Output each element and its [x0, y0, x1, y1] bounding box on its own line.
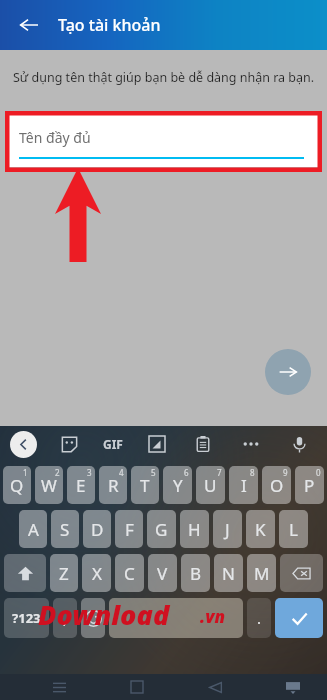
- button[interactable]: Home: [126, 676, 148, 698]
- staticText: L: [289, 518, 298, 541]
- button[interactable]: Emoji: [81, 598, 105, 638]
- button[interactable]: Shift: [4, 554, 46, 592]
- button[interactable]: Z: [50, 554, 78, 592]
- button[interactable]: S: [51, 510, 79, 548]
- staticText: 8: [250, 467, 255, 478]
- staticText: P: [304, 474, 315, 497]
- button[interactable]: More: [239, 432, 263, 456]
- staticText: D: [91, 518, 104, 541]
- staticText: Y: [173, 474, 183, 497]
- staticText: M: [254, 562, 270, 585]
- button[interactable]: G: [147, 510, 176, 548]
- button[interactable]: Clipboard: [191, 432, 215, 456]
- staticText: ,: [63, 608, 68, 628]
- button[interactable]: Close toolbar: [10, 431, 37, 458]
- staticText: R: [108, 474, 119, 497]
- button[interactable]: N: [214, 554, 243, 592]
- button[interactable]: T: [131, 466, 159, 504]
- staticText: T: [140, 474, 150, 497]
- staticText: A: [28, 518, 39, 541]
- staticText: O: [270, 474, 284, 497]
- button[interactable]: Stickers: [57, 432, 81, 456]
- staticText: 6: [184, 467, 189, 478]
- staticText: 4: [119, 467, 124, 478]
- button[interactable]: Backspace: [280, 554, 323, 592]
- staticText: Q: [10, 474, 24, 497]
- button[interactable]: GIF: [103, 436, 123, 452]
- staticText: .: [257, 608, 262, 628]
- staticText: Sử dụng tên thật giúp bạn bè dễ dàng nhậ…: [13, 69, 315, 86]
- staticText: J: [225, 518, 230, 541]
- staticText: B: [190, 562, 202, 585]
- staticText: 0: [316, 467, 321, 478]
- button[interactable]: Enter: [275, 598, 323, 638]
- button[interactable]: A: [19, 510, 47, 548]
- button[interactable]: H: [180, 510, 209, 548]
- staticText: H: [188, 518, 201, 541]
- button[interactable]: I: [229, 466, 258, 504]
- button[interactable]: Hide keyboard: [282, 676, 304, 698]
- staticText: 2: [55, 467, 60, 478]
- staticText: Tên đầy đủ: [19, 128, 91, 147]
- staticText: 1: [23, 467, 28, 478]
- button[interactable]: Voice input: [287, 432, 311, 456]
- button[interactable]: Q: [3, 466, 31, 504]
- button[interactable]: .: [247, 598, 271, 638]
- button[interactable]: Screenshot: [145, 432, 169, 456]
- staticText: X: [92, 562, 102, 585]
- button[interactable]: Back: [204, 676, 226, 698]
- staticText: 9: [283, 467, 288, 478]
- button[interactable]: ?123: [4, 598, 49, 638]
- staticText: I: [241, 474, 247, 497]
- staticText: S: [60, 518, 70, 541]
- staticText: 3: [87, 467, 92, 478]
- button[interactable]: W: [35, 466, 63, 504]
- button[interactable]: Recents: [48, 676, 70, 698]
- staticText: .vn: [200, 605, 226, 628]
- button[interactable]: M: [247, 554, 276, 592]
- staticText: F: [125, 518, 134, 541]
- staticText: ?123: [12, 609, 41, 627]
- button[interactable]: Next: [265, 349, 311, 395]
- button[interactable]: P: [295, 466, 324, 504]
- button[interactable]: X: [82, 554, 111, 592]
- button[interactable]: U: [196, 466, 225, 504]
- button[interactable]: ,: [53, 598, 77, 638]
- staticText: W: [41, 474, 57, 497]
- button[interactable]: R: [99, 466, 127, 504]
- staticText: GIF: [103, 436, 123, 452]
- button[interactable]: J: [213, 510, 242, 548]
- staticText: U: [204, 474, 217, 497]
- button[interactable]: L: [279, 510, 308, 548]
- button[interactable]: Y: [163, 466, 192, 504]
- staticText: 7: [217, 467, 222, 478]
- staticText: K: [255, 518, 266, 541]
- staticText: 5: [151, 467, 156, 478]
- button[interactable]: B: [181, 554, 210, 592]
- button[interactable]: K: [246, 510, 275, 548]
- button[interactable]: E: [67, 466, 95, 504]
- button[interactable]: O: [262, 466, 291, 504]
- button[interactable]: Space: [109, 598, 243, 638]
- staticText: Tạo tài khoản: [58, 14, 161, 36]
- staticText: C: [124, 562, 135, 585]
- staticText: N: [222, 562, 235, 585]
- staticText: Z: [59, 562, 69, 585]
- button[interactable]: V: [148, 554, 177, 592]
- button[interactable]: F: [115, 510, 143, 548]
- button[interactable]: D: [83, 510, 111, 548]
- staticText: G: [155, 518, 168, 541]
- button[interactable]: Tên đầy đủ: [9, 115, 318, 167]
- button[interactable]: Back: [12, 8, 46, 42]
- staticText: V: [157, 562, 168, 585]
- staticText: Download: [38, 596, 170, 633]
- button[interactable]: C: [115, 554, 144, 592]
- staticText: E: [76, 474, 86, 497]
